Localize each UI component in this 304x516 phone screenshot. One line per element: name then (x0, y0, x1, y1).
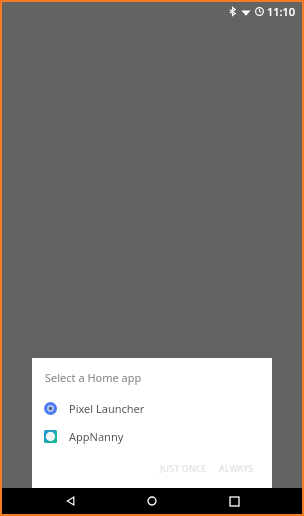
staticText: AppNanny (69, 429, 124, 444)
staticText: Select a Home app (45, 370, 142, 385)
staticText: ALWAYS (219, 462, 254, 474)
staticText: 11:10 (267, 4, 296, 19)
button[interactable]: Home (139, 488, 165, 514)
button[interactable]: AppNanny (32, 422, 272, 450)
button[interactable]: Pixel Launcher (32, 394, 272, 422)
button[interactable]: Recents (221, 488, 247, 514)
staticText: JUST ONCE (160, 462, 207, 474)
button[interactable]: ALWAYS (213, 456, 260, 480)
staticText: Pixel Launcher (69, 401, 145, 416)
button[interactable]: JUST ONCE (154, 456, 213, 480)
button[interactable]: Back (58, 488, 84, 514)
